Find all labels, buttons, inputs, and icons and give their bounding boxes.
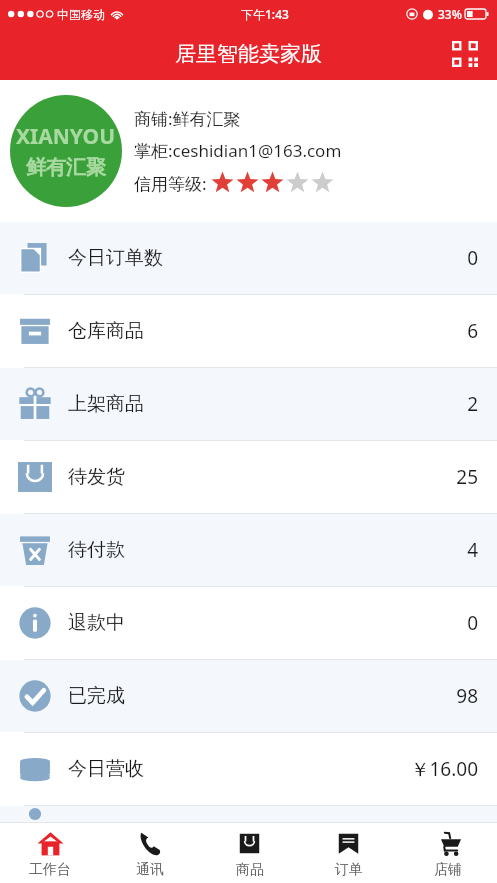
staticText: 待付款 [68, 538, 125, 562]
staticText: 33% [438, 6, 462, 22]
staticText: 居里智能卖家版 [175, 41, 322, 67]
staticText: 4 [467, 537, 478, 563]
staticText: 下午1:43 [241, 6, 289, 22]
staticText: 退款中 [68, 611, 125, 635]
staticText: 2 [467, 391, 478, 417]
staticText: 0 [467, 245, 478, 271]
staticText: XIANYOU [16, 122, 116, 151]
staticText: 商品 [236, 861, 264, 879]
button[interactable]: 店铺 [398, 823, 497, 883]
button[interactable]: 订单 [299, 823, 398, 883]
button[interactable]: 上架商品 [0, 368, 497, 440]
staticText: 0 [467, 610, 478, 636]
staticText: 商铺:鲜有汇聚 [134, 107, 241, 130]
button[interactable]: XIANYOU [0, 80, 497, 222]
button[interactable]: 待发货 [0, 441, 497, 513]
button[interactable]: Scan QR code [445, 34, 485, 74]
button[interactable]: 通讯 [100, 823, 200, 883]
button[interactable]: 仓库商品 [0, 295, 497, 367]
button[interactable]: 退款中 [0, 587, 497, 659]
staticText: ￥16.00 [410, 756, 478, 782]
button[interactable]: 待付款 [0, 514, 497, 586]
staticText: 鲜有汇聚 [26, 155, 106, 180]
button[interactable]: 商品 [200, 823, 299, 883]
button[interactable]: 工作台 [0, 823, 100, 883]
staticText: 信用等级: [134, 172, 207, 195]
staticText: 店铺 [434, 861, 462, 879]
button[interactable] [0, 806, 497, 822]
staticText: 掌柜:ceshidian1@163.com [134, 139, 342, 162]
staticText: 25 [456, 464, 478, 490]
staticText: 今日营收 [68, 757, 144, 781]
staticText: 通讯 [136, 861, 164, 879]
staticText: 98 [456, 683, 478, 709]
staticText: 今日订单数 [68, 246, 163, 270]
staticText: 订单 [335, 861, 363, 879]
staticText: 上架商品 [68, 392, 144, 416]
staticText: 待发货 [68, 465, 125, 489]
staticText: 仓库商品 [68, 319, 144, 343]
button[interactable]: 已完成 [0, 660, 497, 732]
staticText: 6 [467, 318, 478, 344]
staticText: 已完成 [68, 684, 125, 708]
staticText: 工作台 [29, 861, 71, 879]
button[interactable]: 今日订单数 [0, 222, 497, 294]
staticText: 中国移动 [57, 7, 105, 22]
button[interactable]: 今日营收 [0, 733, 497, 805]
